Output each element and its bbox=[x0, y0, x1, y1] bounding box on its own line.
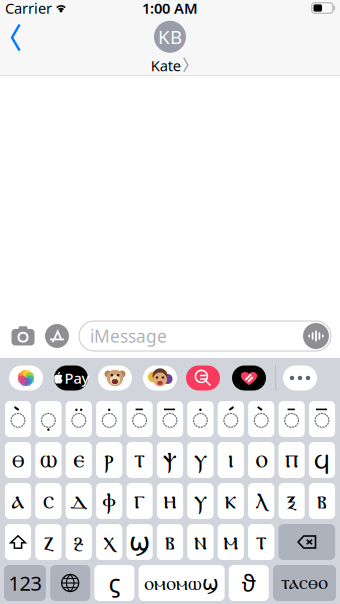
button[interactable]: ⲑ bbox=[5, 442, 31, 478]
button[interactable]: Diacritic bbox=[278, 401, 305, 437]
button[interactable]: Photos bbox=[9, 365, 43, 390]
button[interactable]: Record audio bbox=[303, 323, 329, 349]
staticText: ⲧ bbox=[134, 448, 145, 472]
staticText: ⲩ bbox=[194, 489, 207, 513]
staticText: ⲃ bbox=[317, 489, 327, 513]
staticText: ⲗ bbox=[255, 489, 267, 513]
button[interactable]: ⲏ bbox=[157, 483, 183, 519]
button[interactable]: ⲧ bbox=[126, 442, 153, 478]
button[interactable]: ϥ bbox=[309, 442, 335, 478]
staticText: ⲓ bbox=[228, 448, 234, 472]
button[interactable]: ⲱ bbox=[35, 442, 61, 478]
staticText: 123 bbox=[8, 570, 41, 596]
staticText: Pay bbox=[64, 368, 89, 388]
button[interactable]: ⲭ bbox=[96, 524, 122, 560]
button[interactable]: Delete bbox=[278, 524, 335, 560]
staticText: ⲟⲙⲟⲙⲱϣ bbox=[144, 572, 219, 594]
staticText: ⲟ bbox=[255, 448, 267, 472]
button[interactable]: ⲁ bbox=[5, 483, 31, 519]
button[interactable]: ⲟ bbox=[248, 442, 274, 478]
button[interactable]: ϛ bbox=[94, 565, 134, 601]
staticText: ⲇ bbox=[70, 489, 87, 513]
staticText: ⲑ bbox=[12, 448, 24, 472]
button[interactable]: Memoji bbox=[98, 365, 132, 390]
button[interactable]: ⳉ bbox=[66, 524, 92, 560]
staticText: ⲏ bbox=[163, 489, 176, 513]
staticText: ⲛ bbox=[194, 530, 207, 554]
staticText: ⲝ bbox=[287, 489, 297, 513]
button[interactable]: ⲓ bbox=[218, 442, 244, 478]
button[interactable]: Diacritic bbox=[35, 401, 61, 437]
staticText: ⲉ bbox=[73, 448, 84, 472]
button[interactable]: Camera bbox=[6, 319, 40, 353]
button[interactable]: Diacritic bbox=[66, 401, 92, 437]
staticText: ⲧⲁⲥⲑⲟ bbox=[281, 573, 328, 593]
button[interactable]: More bbox=[283, 365, 317, 390]
button[interactable]: Shift bbox=[5, 524, 31, 560]
button[interactable]: Apps bbox=[40, 319, 74, 353]
button[interactable]: Numbers bbox=[4, 565, 46, 601]
staticText: ⲩ bbox=[194, 448, 207, 472]
staticText: Kate bbox=[151, 56, 181, 75]
button[interactable]: Diacritic bbox=[187, 401, 213, 437]
button[interactable]: Diacritic bbox=[248, 401, 274, 437]
button[interactable]: Diacritic bbox=[126, 401, 153, 437]
button[interactable]: Diacritic bbox=[96, 401, 122, 437]
button[interactable]: ⲧ bbox=[248, 524, 274, 560]
staticText: 1:00 AM bbox=[142, 0, 198, 18]
staticText: ⲁ bbox=[11, 489, 24, 513]
staticText: ϛ bbox=[108, 566, 120, 600]
button[interactable]: ⲩ bbox=[187, 483, 213, 519]
staticText: iMessage bbox=[90, 324, 167, 347]
staticText: ⲣ bbox=[104, 448, 114, 472]
staticText: ⲅ bbox=[134, 489, 145, 513]
button[interactable]: Diacritic bbox=[218, 401, 244, 437]
button[interactable]: Memoji 2 bbox=[143, 365, 177, 390]
button[interactable]: space bbox=[139, 565, 225, 601]
button[interactable]: Back bbox=[1, 22, 33, 56]
staticText: ⲧ bbox=[256, 530, 267, 554]
staticText: ⲙ bbox=[223, 530, 238, 554]
button[interactable]: ⲃ bbox=[157, 524, 183, 560]
staticText: KB bbox=[158, 24, 182, 49]
staticText: ⲕ bbox=[225, 489, 237, 513]
button[interactable]: ⲩ bbox=[187, 442, 213, 478]
button[interactable]: Images bbox=[186, 365, 220, 390]
button[interactable]: ⲫ bbox=[96, 483, 122, 519]
button[interactable]: Diacritic bbox=[5, 401, 31, 437]
staticText: ⲍ bbox=[43, 530, 53, 554]
staticText: Carrier bbox=[5, 0, 52, 18]
staticText: ⲡ bbox=[285, 448, 298, 472]
button[interactable]: ⲛ bbox=[187, 524, 213, 560]
staticText: ϑ bbox=[242, 568, 256, 598]
button[interactable]: ϑ bbox=[229, 565, 269, 601]
button[interactable]: ⲯ bbox=[157, 442, 183, 478]
button[interactable]: ⲉ bbox=[66, 442, 92, 478]
button[interactable]: ⲅ bbox=[126, 483, 153, 519]
button[interactable]: ⲍ bbox=[35, 524, 61, 560]
button[interactable]: ⲕ bbox=[218, 483, 244, 519]
button[interactable]: ⲗ bbox=[248, 483, 274, 519]
staticText: ϣ bbox=[129, 528, 150, 556]
staticText: ϥ bbox=[313, 446, 330, 474]
button[interactable]: return bbox=[273, 565, 336, 601]
staticText: ⳉ bbox=[74, 530, 84, 554]
button[interactable]: Diacritic bbox=[157, 401, 183, 437]
button[interactable]: ⲣ bbox=[96, 442, 122, 478]
button[interactable]: ⲃ bbox=[309, 483, 335, 519]
button[interactable]: Diacritic bbox=[309, 401, 335, 437]
button[interactable]: Next keyboard bbox=[50, 565, 90, 601]
staticText: ⲥ bbox=[43, 489, 54, 513]
button[interactable]: ⲡ bbox=[278, 442, 305, 478]
button[interactable]: ⲇ bbox=[66, 483, 92, 519]
button[interactable]: ⲙ bbox=[218, 524, 244, 560]
button[interactable]: Apple Pay bbox=[54, 365, 88, 390]
staticText: ⲯ bbox=[163, 448, 177, 472]
staticText: ⲃ bbox=[165, 530, 175, 554]
button[interactable]: ⲝ bbox=[278, 483, 305, 519]
staticText: ⲭ bbox=[103, 530, 115, 554]
button[interactable]: ϣ bbox=[126, 524, 153, 560]
button[interactable]: Digital Touch bbox=[232, 365, 266, 390]
button[interactable]: ⲥ bbox=[35, 483, 61, 519]
staticText: ⲫ bbox=[102, 489, 116, 513]
